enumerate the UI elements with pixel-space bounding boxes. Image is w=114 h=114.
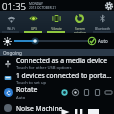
staticText: Bluetooth [95, 27, 110, 31]
staticText: Touch for other USB options [16, 65, 72, 71]
button[interactable]: Quick action 5 [105, 89, 112, 96]
staticText: Connected as a media device [16, 56, 107, 65]
staticText: Noise Machine [16, 104, 63, 113]
button[interactable]: Vibrate [45, 11, 68, 33]
button[interactable]: Brightness [0, 33, 14, 49]
staticText: Vibrate [51, 27, 62, 31]
button[interactable]: Rotate [0, 85, 114, 100]
button[interactable]: Previous [61, 109, 70, 114]
button[interactable]: Quick action 3 [83, 89, 90, 96]
button[interactable]: Wi-Fi [0, 11, 22, 33]
button[interactable]: Brightness slider [14, 33, 88, 49]
button[interactable]: Noise Machine [0, 100, 114, 114]
staticText: Auto [98, 38, 108, 44]
staticText: Screen rotation [74, 27, 86, 33]
button[interactable]: Bluetooth [91, 11, 114, 33]
staticText: 01:35 [2, 0, 27, 10]
button[interactable]: 1 devices connected to portable... [0, 71, 114, 85]
button[interactable]: GPS [22, 11, 45, 33]
staticText: Touch to set up [16, 80, 47, 85]
staticText: Ongoing [3, 50, 22, 56]
button[interactable]: Settings [103, 0, 114, 11]
button[interactable]: Auto [88, 33, 114, 49]
staticText: Wi-Fi [7, 27, 15, 31]
button[interactable]: Quick action 4 [94, 89, 101, 96]
staticText: GPS [31, 27, 37, 31]
button[interactable]: Quick action 2 [72, 89, 79, 96]
button[interactable]: Quick action 1 [61, 89, 68, 96]
staticText: Rotate [16, 85, 38, 95]
staticText: 1 devices connected to portable... [16, 71, 113, 80]
staticText: MONDAY [29, 2, 43, 6]
button[interactable]: Play [75, 109, 83, 114]
staticText: 2013 OCTOBER 21 [29, 6, 57, 10]
staticText: Auto [16, 95, 26, 100]
button[interactable]: Screen rotation [68, 11, 91, 33]
button[interactable]: Connected as a media device [0, 56, 114, 71]
